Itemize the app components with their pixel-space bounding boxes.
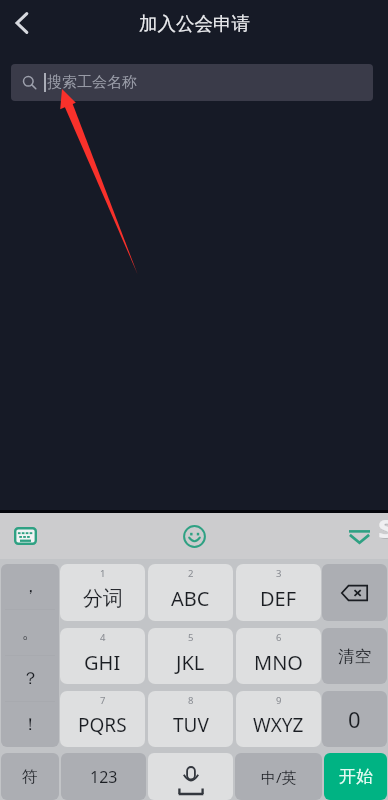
staticText: 9 bbox=[276, 694, 282, 707]
staticText: 123 bbox=[90, 766, 118, 788]
staticText: 开始 bbox=[339, 766, 373, 787]
button[interactable]: 4 bbox=[60, 628, 145, 684]
staticText: TUV bbox=[173, 712, 209, 738]
button[interactable]: 9 bbox=[236, 691, 321, 747]
staticText: GHI bbox=[84, 649, 121, 676]
button[interactable]: 1 bbox=[60, 564, 145, 621]
button[interactable]: 8 bbox=[148, 691, 233, 747]
staticText: 1 bbox=[100, 567, 106, 580]
staticText: 2 bbox=[188, 567, 194, 580]
button[interactable]: 123 bbox=[61, 753, 146, 800]
staticText: 4 bbox=[100, 631, 106, 644]
button[interactable]: Switch keyboard layout bbox=[3, 514, 47, 558]
button[interactable]: Emoji bbox=[174, 516, 214, 556]
staticText: WXYZ bbox=[253, 712, 304, 738]
button[interactable]: 5 bbox=[148, 628, 233, 684]
staticText: 搜索工会名称 bbox=[47, 73, 137, 92]
staticText: 3 bbox=[276, 567, 282, 580]
button[interactable]: 清空 bbox=[322, 628, 387, 684]
button[interactable]: 开始 bbox=[324, 753, 387, 800]
staticText: PQRS bbox=[78, 712, 127, 738]
staticText: 中/英 bbox=[261, 767, 297, 787]
button[interactable]: Delete bbox=[322, 564, 387, 621]
button[interactable]: Back bbox=[0, 0, 44, 46]
staticText: MNO bbox=[254, 649, 303, 676]
staticText: ABC bbox=[171, 585, 210, 612]
button[interactable]: 符 bbox=[1, 753, 59, 800]
button[interactable]: 2 bbox=[148, 564, 233, 621]
staticText: 8 bbox=[188, 694, 194, 707]
staticText: 6 bbox=[276, 631, 282, 644]
button[interactable]: 中/英 bbox=[235, 753, 322, 800]
button[interactable]: 3 bbox=[236, 564, 321, 621]
staticText: ？ bbox=[22, 668, 39, 689]
button[interactable]: 搜索工会名称 bbox=[11, 64, 373, 101]
staticText: 0 bbox=[348, 704, 361, 734]
staticText: 。 bbox=[22, 622, 39, 643]
staticText: 加入公会申请 bbox=[139, 12, 250, 35]
button[interactable]: 7 bbox=[60, 691, 145, 747]
staticText: s bbox=[379, 504, 388, 549]
staticText: JKL bbox=[176, 649, 205, 676]
staticText: DEF bbox=[260, 585, 297, 612]
button[interactable]: 0 bbox=[322, 691, 387, 747]
staticText: 清空 bbox=[338, 646, 371, 667]
staticText: 符 bbox=[22, 767, 38, 787]
button[interactable]: Hide keyboard bbox=[337, 514, 381, 558]
button[interactable]: ， bbox=[1, 564, 59, 747]
staticText: ！ bbox=[22, 714, 39, 735]
staticText: ， bbox=[22, 576, 39, 597]
staticText: 7 bbox=[100, 694, 106, 707]
staticText: s bbox=[378, 503, 388, 548]
staticText: 分词 bbox=[83, 586, 123, 611]
staticText: 5 bbox=[188, 631, 194, 644]
button[interactable]: Voice input bbox=[148, 753, 233, 800]
button[interactable]: 6 bbox=[236, 628, 321, 684]
